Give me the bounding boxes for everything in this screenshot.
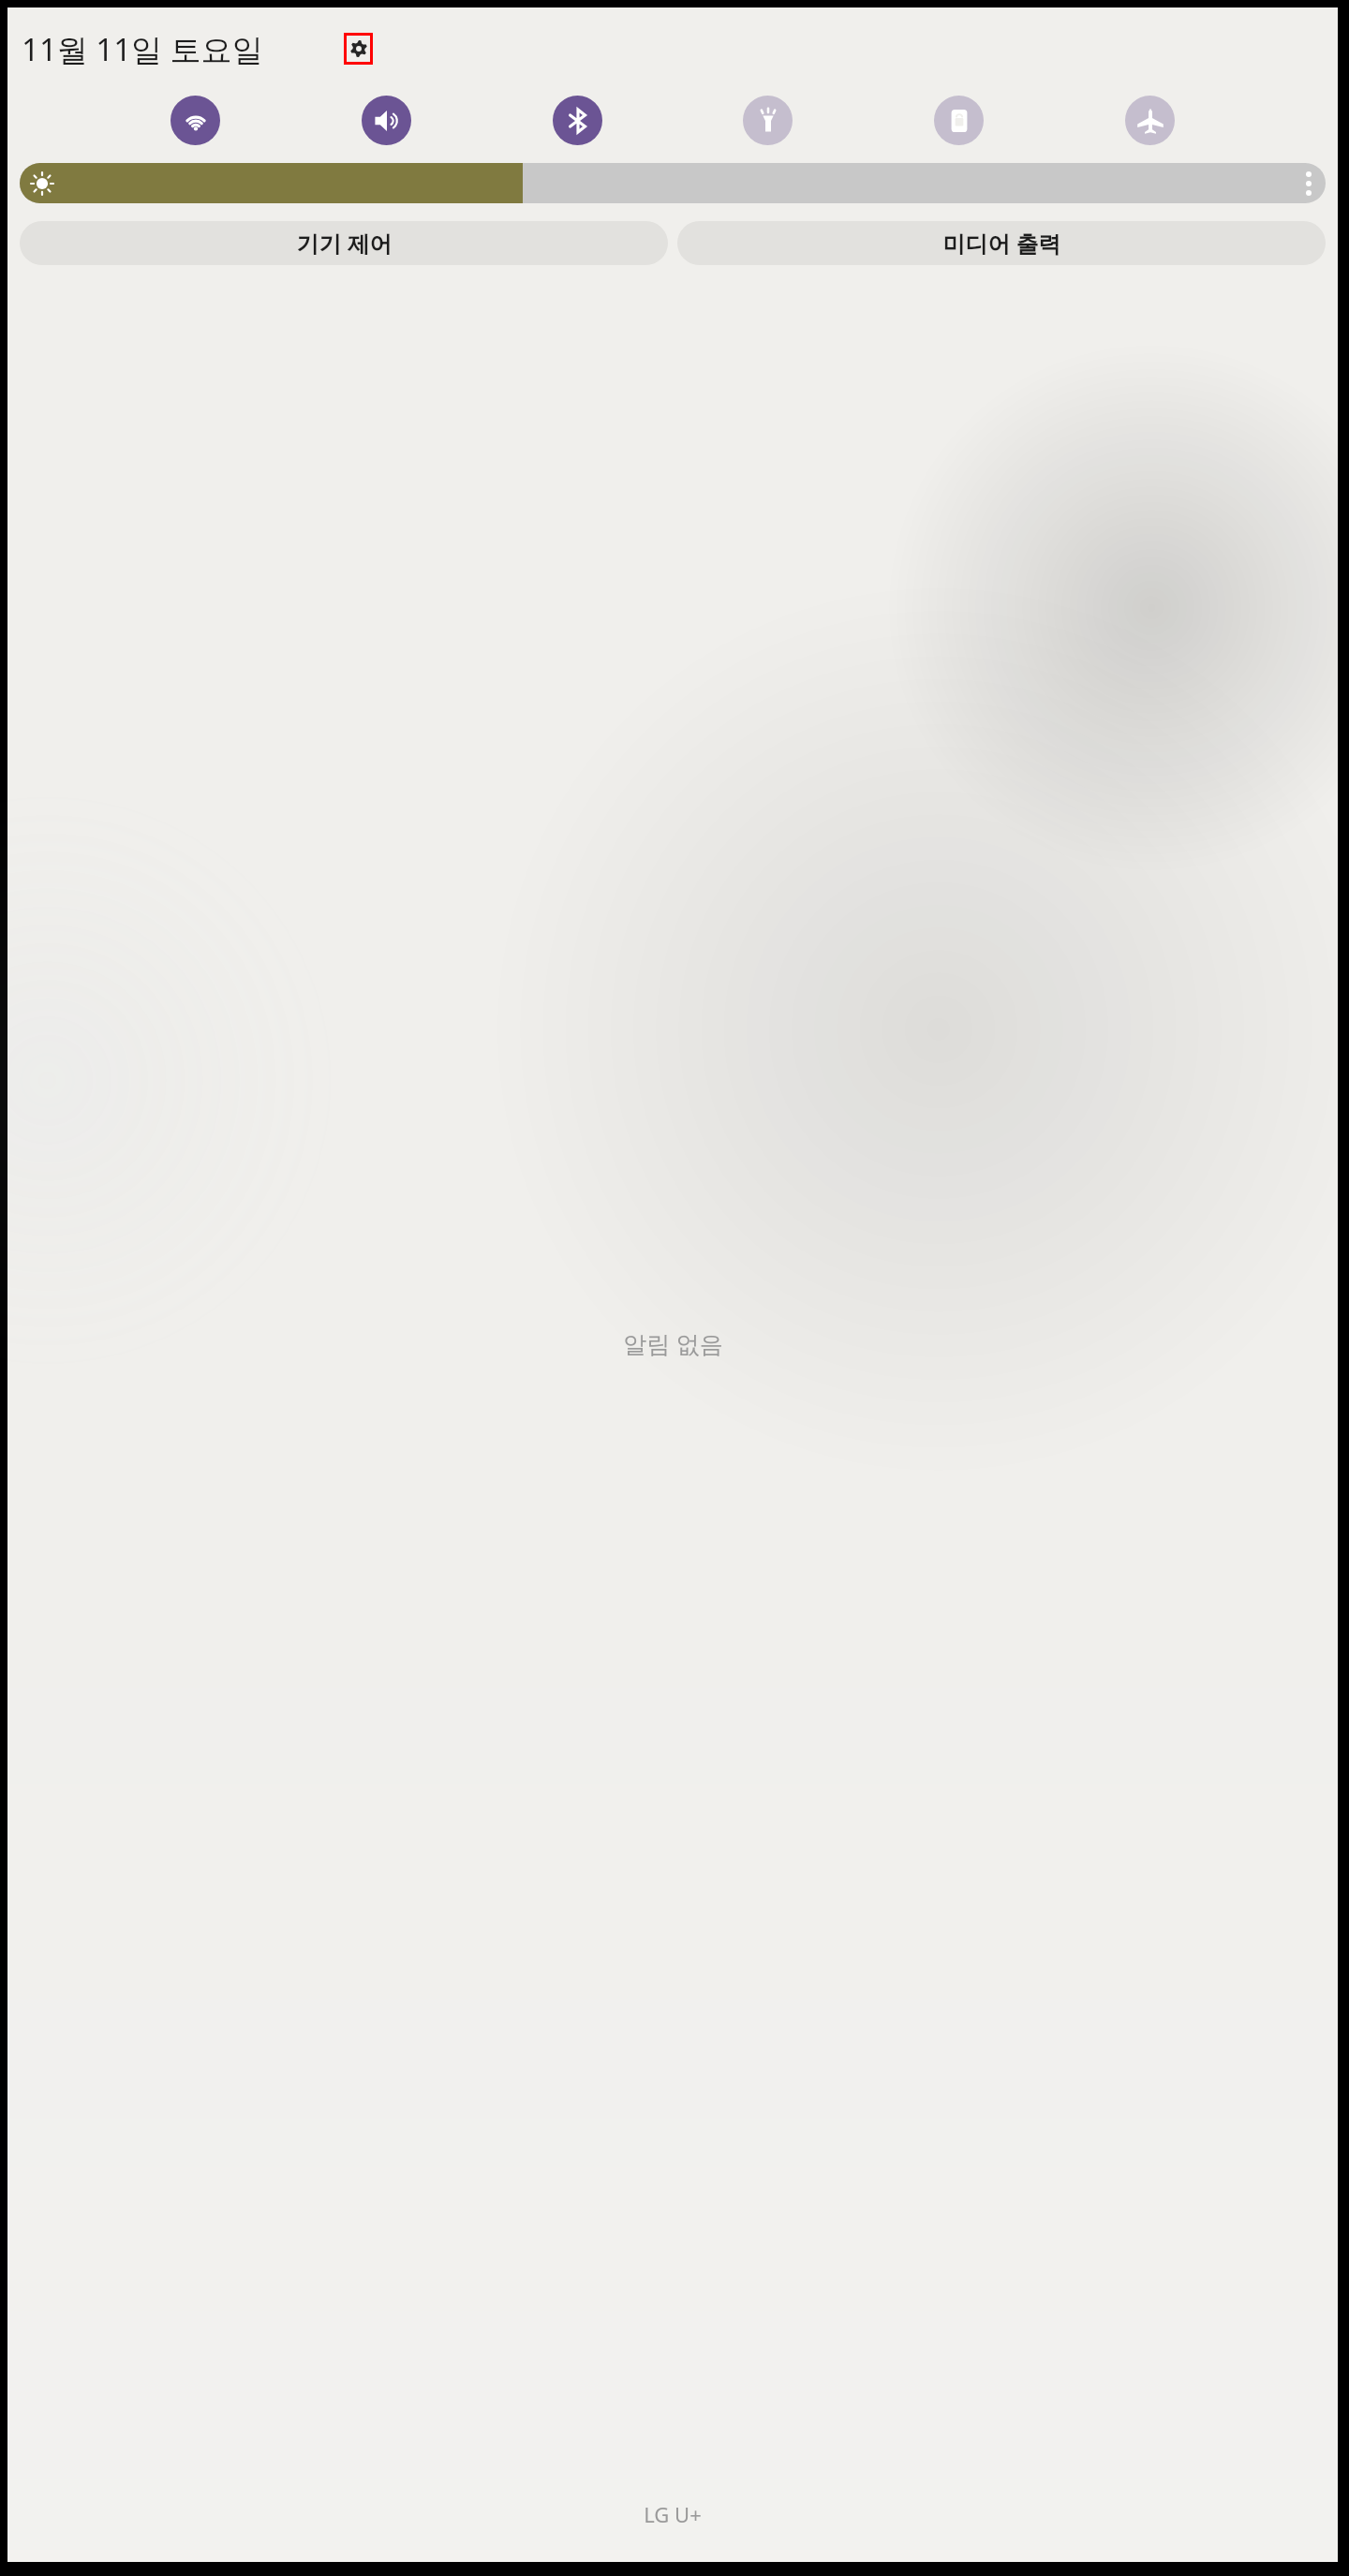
staticText: 알림 없음	[623, 1327, 723, 1359]
button[interactable]: Bluetooth	[553, 96, 602, 145]
button[interactable]: Airplane mode	[1125, 96, 1175, 145]
button[interactable]: Screen lock	[934, 96, 984, 145]
button[interactable]: 기기 제어	[20, 221, 668, 265]
button[interactable]: Settings	[347, 36, 370, 62]
staticText: 기기 제어	[296, 228, 393, 259]
button[interactable]	[20, 163, 1326, 203]
button[interactable]: Flashlight	[743, 96, 793, 145]
staticText: LG U+	[644, 2500, 702, 2528]
staticText: 미디어 출력	[942, 228, 1061, 259]
button[interactable]: Sound	[362, 96, 411, 145]
button[interactable]: 11월 11일 토요일	[22, 28, 263, 70]
button[interactable]: 미디어 출력	[677, 221, 1326, 265]
button[interactable]: Wi-Fi	[170, 96, 220, 145]
